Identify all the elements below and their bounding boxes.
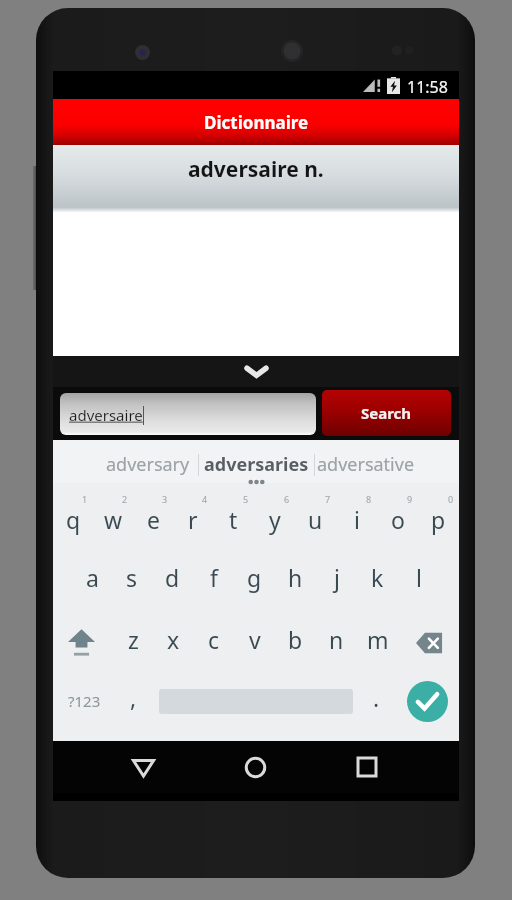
staticText: 3 [162, 493, 168, 505]
staticText: o [391, 504, 405, 535]
staticText: adversary [106, 452, 190, 477]
staticText: c [208, 624, 220, 655]
button[interactable]: . [356, 670, 396, 732]
button[interactable]: Shift [53, 607, 113, 670]
staticText: t [229, 504, 238, 535]
button[interactable]: s [112, 545, 152, 607]
button[interactable]: 3 [133, 483, 173, 545]
staticText: adversaries [204, 452, 309, 477]
staticText: 6 [284, 493, 290, 505]
staticText: r [188, 504, 198, 535]
staticText: x [167, 624, 180, 655]
staticText: adversative [317, 452, 415, 477]
staticText: z [128, 624, 139, 655]
button[interactable]: n [316, 607, 357, 670]
button[interactable]: Space [153, 670, 353, 732]
button[interactable]: k [357, 545, 398, 607]
button[interactable]: 2 [93, 483, 133, 545]
staticText: 5 [243, 493, 249, 505]
staticText: g [247, 562, 262, 593]
button[interactable]: Backspace [398, 607, 459, 670]
button[interactable]: 9 [377, 483, 418, 545]
staticText: n [329, 624, 344, 655]
staticText: a [86, 562, 99, 593]
staticText: adversaire [69, 405, 143, 425]
staticText: adversaire n. [188, 155, 324, 184]
staticText: i [354, 504, 360, 535]
staticText: 4 [202, 493, 208, 505]
staticText: 11:58 [407, 76, 448, 98]
staticText: 2 [122, 493, 128, 505]
staticText: e [147, 504, 160, 535]
button[interactable]: 1 [53, 483, 93, 545]
button[interactable]: Dictionnaire [53, 99, 459, 145]
staticText: f [210, 562, 218, 593]
button[interactable]: adversary [97, 443, 198, 486]
button[interactable]: c [193, 607, 234, 670]
button[interactable]: Enter [401, 670, 454, 732]
button[interactable]: Recent apps [347, 741, 387, 793]
staticText: d [165, 562, 180, 593]
button[interactable]: h [275, 545, 316, 607]
staticText: 9 [407, 493, 413, 505]
button[interactable]: j [316, 545, 357, 607]
button[interactable]: m [357, 607, 398, 670]
button[interactable]: 7 [295, 483, 336, 545]
staticText: Search [361, 403, 412, 423]
staticText: 7 [325, 493, 331, 505]
staticText: , [130, 682, 137, 713]
button[interactable]: ?123 [57, 670, 112, 732]
button[interactable]: d [152, 545, 193, 607]
button[interactable]: l [398, 545, 439, 607]
staticText: y [269, 504, 281, 535]
staticText: l [416, 562, 422, 593]
staticText: m [367, 624, 389, 655]
staticText: b [288, 624, 303, 655]
button[interactable]: adversaire [60, 393, 316, 435]
button[interactable]: Search [322, 390, 451, 436]
button[interactable]: adversaries [199, 443, 314, 486]
button[interactable]: v [234, 607, 275, 670]
staticText: . [373, 682, 380, 713]
staticText: q [66, 504, 81, 535]
staticText: j [334, 562, 340, 593]
button[interactable]: , [113, 670, 153, 732]
button[interactable]: x [153, 607, 193, 670]
staticText: 8 [366, 493, 372, 505]
staticText: v [249, 624, 261, 655]
staticText: h [288, 562, 303, 593]
staticText: w [104, 504, 123, 535]
button[interactable]: b [275, 607, 316, 670]
button[interactable]: a [72, 545, 112, 607]
staticText: u [308, 504, 323, 535]
button[interactable]: 5 [213, 483, 254, 545]
button[interactable]: f [193, 545, 234, 607]
staticText: 1 [82, 493, 88, 505]
button[interactable]: 6 [254, 483, 295, 545]
button[interactable]: Back [123, 741, 163, 793]
button[interactable]: adversative [315, 443, 416, 486]
staticText: Dictionnaire [204, 111, 309, 134]
staticText: p [431, 504, 446, 535]
staticText: s [126, 562, 138, 593]
button[interactable]: Home [235, 741, 275, 793]
button[interactable]: Expand entry [53, 356, 459, 387]
button[interactable]: 4 [173, 483, 213, 545]
button[interactable]: z [113, 607, 153, 670]
staticText: ?123 [68, 691, 101, 711]
staticText: 0 [448, 493, 454, 505]
button[interactable]: 0 [418, 483, 459, 545]
button[interactable]: 8 [336, 483, 377, 545]
button[interactable]: g [234, 545, 275, 607]
staticText: k [371, 562, 384, 593]
